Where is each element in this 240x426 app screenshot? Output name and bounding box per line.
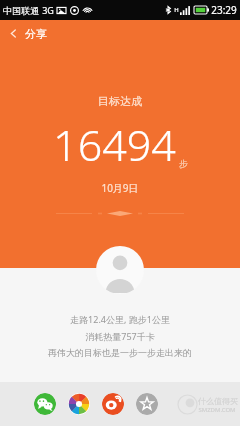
button[interactable]: Weibo bbox=[102, 393, 124, 415]
staticText: 16494 bbox=[53, 115, 176, 174]
staticText: 分享 bbox=[25, 27, 47, 41]
button[interactable]: Moments bbox=[68, 393, 90, 415]
staticText: 什么值得买 bbox=[198, 396, 238, 406]
staticText: 10月9日 bbox=[101, 181, 139, 195]
staticText: 走路12.4公里, 跑步1公里 bbox=[70, 313, 170, 325]
staticText: 再伟大的目标也是一步一步走出来的 bbox=[48, 347, 192, 358]
staticText: 中国联通 bbox=[3, 5, 39, 16]
staticText: 23:29 bbox=[211, 3, 237, 17]
staticText: 3G bbox=[42, 4, 54, 16]
button[interactable]: Favorite bbox=[136, 393, 158, 415]
staticText: 目标达成 bbox=[98, 94, 142, 108]
button[interactable]: WeChat bbox=[34, 393, 56, 415]
staticText: H bbox=[174, 6, 179, 14]
button[interactable]: Back bbox=[0, 20, 59, 47]
staticText: 消耗热量757千卡 bbox=[85, 330, 155, 342]
staticText: 步 bbox=[179, 158, 188, 169]
staticText: SMZDM.COM bbox=[198, 406, 236, 414]
